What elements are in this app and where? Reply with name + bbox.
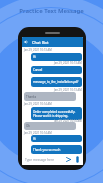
button[interactable]: Send — [65, 156, 72, 163]
staticText: Jan 29, 2021 10:13 AM — [54, 88, 82, 92]
button[interactable]: Cancel — [31, 66, 82, 74]
staticText: Jan 29, 2021 10:14 AM — [24, 102, 52, 106]
staticText: Jan 29, 2021 10:14 AM — [24, 131, 52, 135]
staticText: Thank you so much — [33, 148, 61, 152]
button[interactable]: Thanks — [24, 92, 76, 101]
staticText: Chat Bot — [32, 40, 49, 45]
staticText: Hi — [33, 55, 36, 59]
staticText: Jan 29, 2021 10:14 AM — [54, 119, 82, 123]
staticText: Cancel — [33, 68, 43, 72]
button[interactable]: Order completed successfully. Please wai… — [31, 107, 82, 120]
staticText: Hi — [33, 137, 36, 141]
button[interactable]: message_to_the_installation.pdf — [31, 77, 82, 87]
staticText: Thanks — [26, 95, 37, 99]
button[interactable]: Thank you so much — [31, 145, 82, 154]
button[interactable]: Back — [22, 37, 83, 47]
button[interactable]: Attach — [74, 156, 81, 163]
staticText: Type message here — [25, 158, 54, 162]
button[interactable]: Hi — [31, 135, 82, 142]
staticText: Practice Text Message — [0, 7, 103, 15]
other: Back — [24, 40, 28, 44]
staticText: message_to_the_installation.pdf — [33, 80, 79, 84]
button[interactable]: Hi — [31, 53, 82, 61]
staticText: Jan 29, 2021 10:13 AM — [54, 61, 82, 65]
staticText: Ok — [26, 124, 30, 128]
staticText: Jan 29, 2021 10:13 AM — [24, 48, 52, 52]
staticText: Order completed successfully. Please wai… — [33, 110, 80, 118]
button[interactable]: Ok — [24, 122, 76, 130]
